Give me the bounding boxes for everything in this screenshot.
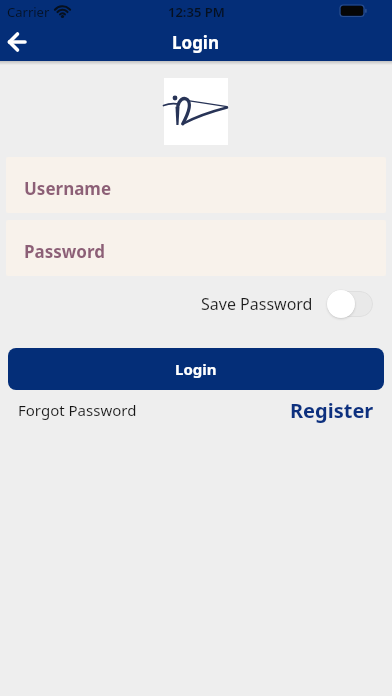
button[interactable]: [328, 290, 373, 318]
button[interactable]: [2, 24, 36, 60]
staticText: Password: [24, 240, 105, 263]
staticText: Login: [175, 359, 217, 379]
staticText: Save Password: [201, 293, 313, 315]
button[interactable]: Username: [6, 157, 386, 213]
staticText: Login: [172, 31, 220, 54]
staticText: Carrier: [7, 3, 50, 21]
staticText: Username: [24, 177, 112, 200]
button[interactable]: Register: [290, 397, 374, 424]
button[interactable]: Login: [8, 348, 384, 390]
button[interactable]: Password: [6, 220, 386, 276]
staticText: 12:35 PM: [168, 3, 225, 21]
button[interactable]: Forgot Password: [18, 400, 137, 420]
